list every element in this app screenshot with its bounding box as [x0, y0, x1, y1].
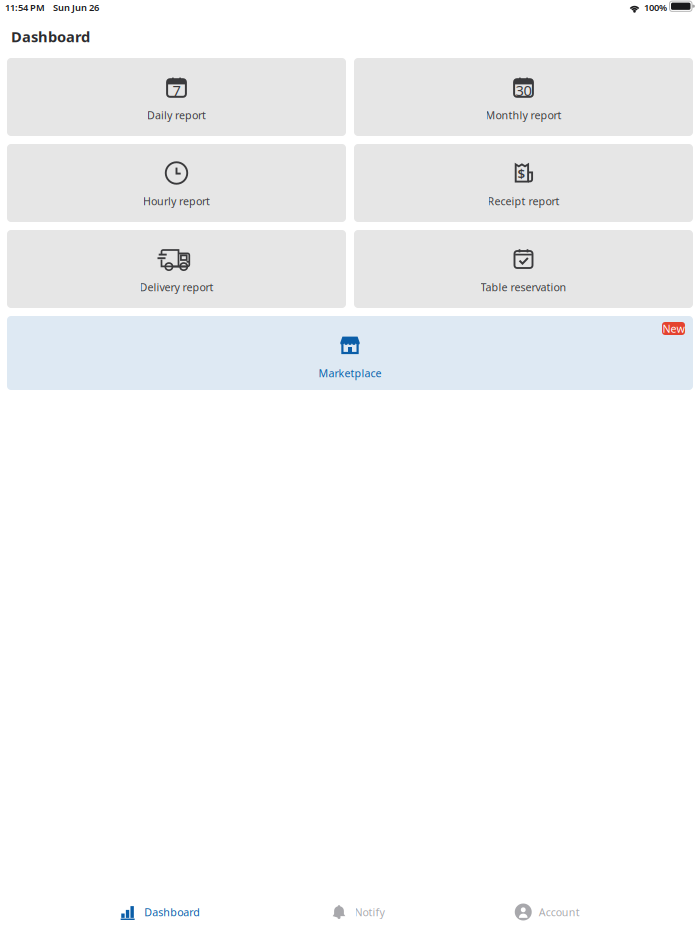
staticText: Notify [354, 905, 384, 919]
staticText: 100% [644, 1, 667, 14]
staticText: Account [539, 905, 580, 919]
staticText: Delivery report [139, 280, 213, 294]
staticText: Hourly report [143, 194, 210, 208]
button[interactable]: Hourly report [7, 144, 346, 222]
staticText: New [662, 321, 684, 336]
staticText: 7 [172, 80, 180, 100]
staticText: Monthly report [485, 108, 561, 122]
staticText: 11:54 PM [5, 1, 45, 14]
staticText: Daily report [147, 108, 206, 122]
staticText: Receipt report [487, 194, 559, 208]
staticText: $ [518, 165, 526, 182]
staticText: Dashboard [11, 27, 90, 46]
staticText: Sun Jun 26 [53, 1, 99, 14]
button[interactable]: 7 [7, 58, 346, 136]
button[interactable]: Delivery report [7, 230, 346, 308]
button[interactable]: 30 [354, 58, 693, 136]
staticText: Marketplace [318, 366, 381, 380]
staticText: Dashboard [144, 905, 200, 919]
button[interactable]: $ [354, 144, 693, 222]
button[interactable]: Notify [320, 895, 394, 929]
staticText: 30 [515, 80, 531, 100]
button[interactable]: Dashboard [110, 895, 210, 929]
button[interactable]: Account [505, 895, 590, 929]
button[interactable]: Table reservation [354, 230, 693, 308]
button[interactable]: Marketplace [7, 316, 693, 390]
staticText: Table reservation [480, 280, 566, 294]
